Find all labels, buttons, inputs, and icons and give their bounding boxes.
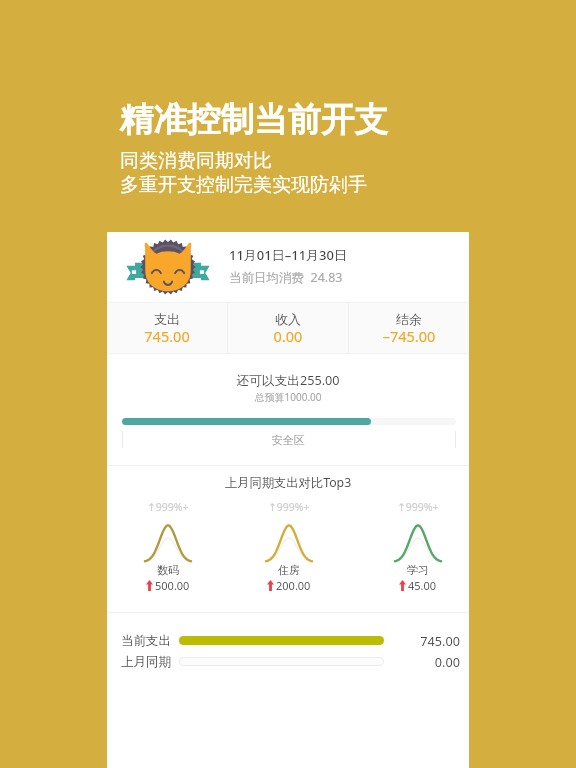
staticText: 上月同期支出对比Top3	[107, 474, 469, 491]
staticText: 500.00	[155, 578, 190, 593]
button[interactable]: ↑999%+	[128, 500, 208, 593]
staticText: 同类消费同期对比	[120, 149, 272, 173]
button[interactable]: ↑999%+	[378, 500, 458, 593]
button[interactable]: 收入	[228, 302, 348, 354]
button[interactable]: Account avatar	[107, 232, 469, 302]
staticText: 收入	[228, 311, 348, 327]
staticText: 当前支出	[121, 633, 171, 649]
staticText: 200.00	[276, 578, 311, 593]
staticText: 11月01日–11月30日	[229, 246, 347, 264]
staticText: 上月同期	[121, 654, 171, 670]
staticText: 数码	[157, 563, 179, 577]
staticText: 精准控制当前开支	[120, 99, 388, 141]
staticText: ↑999%+	[268, 500, 310, 514]
staticText: 0.00	[228, 326, 348, 346]
staticText: –745.00	[349, 326, 469, 346]
staticText: 安全区	[107, 433, 469, 447]
staticText: 多重开支控制完美实现防剁手	[120, 173, 367, 197]
staticText: 45.00	[408, 578, 437, 593]
other: Account avatar	[116, 233, 216, 301]
staticText: ↑999%+	[397, 500, 439, 514]
staticText: 745.00	[390, 632, 460, 649]
button[interactable]	[107, 355, 469, 465]
staticText: 总预算1000.00	[107, 390, 469, 404]
staticText: 住房	[278, 563, 300, 577]
staticText: 745.00	[107, 326, 227, 346]
staticText: 学习	[407, 563, 429, 577]
staticText: 还可以支出255.00	[107, 371, 469, 388]
staticText: 0.00	[390, 653, 460, 670]
button[interactable]: 支出	[107, 302, 227, 354]
button[interactable]: ↑999%+	[249, 500, 329, 593]
staticText: 结余	[349, 311, 469, 327]
button[interactable]: 结余	[349, 302, 469, 354]
staticText: 支出	[107, 311, 227, 327]
staticText: ↑999%+	[147, 500, 189, 514]
staticText: 当前日均消费 24.83	[229, 269, 343, 286]
